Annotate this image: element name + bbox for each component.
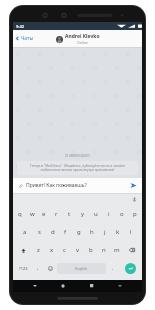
button[interactable]: Voice input: [130, 195, 139, 204]
button[interactable]: .: [107, 259, 119, 277]
button[interactable]: Enter: [119, 259, 141, 277]
button[interactable]: o: [115, 205, 128, 223]
button[interactable]: Чаты: [13, 30, 37, 47]
button[interactable]: a: [18, 223, 32, 241]
button[interactable]: q: [14, 205, 26, 223]
button[interactable]: f: [59, 223, 72, 241]
staticText: Andrei Klevko: [65, 33, 100, 40]
staticText: Привет! Как поживаешь?: [26, 182, 128, 189]
staticText: y: [81, 210, 85, 218]
staticText: r: [55, 210, 58, 218]
button[interactable]: l: [124, 223, 137, 241]
staticText: a: [23, 228, 27, 236]
staticText: e: [42, 210, 46, 218]
staticText: j: [104, 228, 106, 236]
button[interactable]: Backspace: [123, 241, 141, 259]
staticText: q: [18, 210, 22, 218]
button[interactable]: k: [111, 223, 124, 241]
button[interactable]: v: [71, 241, 84, 259]
staticText: h: [90, 228, 94, 236]
button[interactable]: Send: [128, 180, 139, 191]
staticText: Чаты: [21, 35, 34, 42]
staticText: ?123: [19, 266, 28, 271]
staticText: l: [130, 228, 132, 236]
staticText: z: [37, 246, 40, 254]
button[interactable]: h: [85, 223, 98, 241]
button[interactable]: p: [128, 205, 141, 223]
button[interactable]: Emoji: [44, 259, 56, 277]
staticText: ,: [37, 265, 39, 272]
button[interactable]: Теперь в "MarkTexus". Общайтесь, публику…: [17, 161, 138, 175]
button[interactable]: b: [84, 241, 97, 259]
staticText: k: [116, 228, 120, 236]
button[interactable]: g: [72, 223, 85, 241]
button[interactable]: s: [32, 223, 46, 241]
button[interactable]: Attach file: [16, 181, 25, 190]
button[interactable]: m: [110, 241, 123, 259]
staticText: Online: [77, 40, 88, 45]
staticText: m: [114, 246, 120, 254]
button[interactable]: x: [45, 241, 58, 259]
button[interactable]: ?123: [14, 259, 32, 277]
staticText: .: [112, 265, 114, 272]
staticText: f: [64, 228, 67, 236]
staticText: u: [94, 210, 98, 218]
staticText: 21 ИЮНЯ 2020 Г.: [65, 154, 91, 158]
button[interactable]: English: [57, 263, 106, 274]
staticText: o: [120, 210, 124, 218]
button[interactable]: Back: [29, 280, 41, 292]
staticText: English: [75, 266, 88, 271]
button[interactable]: r: [50, 205, 63, 223]
button[interactable]: Andrei Klevko: [56, 33, 100, 45]
staticText: x: [50, 246, 54, 254]
button[interactable]: z: [32, 241, 45, 259]
staticText: n: [102, 246, 106, 254]
staticText: b: [89, 246, 93, 254]
button[interactable]: Home: [57, 280, 69, 292]
button[interactable]: n: [97, 241, 110, 259]
button[interactable]: i: [102, 205, 115, 223]
staticText: g: [77, 228, 81, 236]
button[interactable]: Recent apps: [86, 280, 98, 292]
button[interactable]: y: [76, 205, 89, 223]
button[interactable]: w: [26, 205, 38, 223]
staticText: Теперь в "MarkTexus". Общайтесь, публику…: [21, 164, 134, 172]
button[interactable]: ,: [32, 259, 44, 277]
button[interactable]: Shift: [14, 241, 32, 259]
staticText: v: [76, 246, 80, 254]
staticText: i: [108, 210, 110, 218]
staticText: 9:42: [16, 24, 24, 29]
button[interactable]: c: [58, 241, 71, 259]
button[interactable]: e: [38, 205, 50, 223]
button[interactable]: d: [46, 223, 59, 241]
staticText: p: [133, 210, 137, 218]
button[interactable]: Hide keyboard: [114, 280, 126, 292]
staticText: d: [51, 228, 55, 236]
staticText: c: [63, 246, 66, 254]
button[interactable]: j: [98, 223, 111, 241]
button[interactable]: t: [63, 205, 76, 223]
button[interactable]: u: [89, 205, 102, 223]
staticText: s: [38, 228, 41, 236]
staticText: w: [30, 210, 35, 218]
staticText: t: [68, 210, 71, 218]
